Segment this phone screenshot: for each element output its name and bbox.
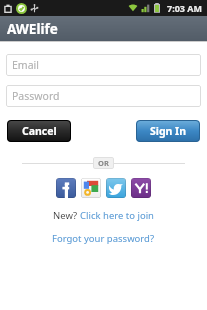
staticText: Cancel (22, 124, 57, 138)
staticText: OR (98, 158, 109, 168)
button[interactable]: Sign in with Google (81, 178, 101, 198)
staticText: Password (12, 89, 60, 103)
staticText: 7:03 AM (167, 2, 203, 14)
button[interactable]: Forgot your password? (48, 231, 159, 246)
button[interactable]: Email (6, 54, 201, 76)
button[interactable]: Cancel (7, 120, 71, 142)
staticText: Forgot your password? (52, 232, 155, 245)
staticText: Sign In (150, 124, 187, 138)
button[interactable]: Password (6, 85, 201, 107)
button[interactable]: Sign in with Facebook (56, 178, 76, 198)
button[interactable]: Sign in with Yahoo (131, 178, 151, 198)
staticText: AWElife (7, 20, 58, 38)
staticText: Email (12, 58, 39, 72)
button[interactable]: Sign In (136, 120, 200, 142)
staticText: New? (53, 209, 80, 222)
staticText: Click here to join (80, 209, 154, 222)
button[interactable]: Click here to join (80, 209, 154, 222)
button[interactable]: Sign in with Twitter (106, 178, 126, 198)
